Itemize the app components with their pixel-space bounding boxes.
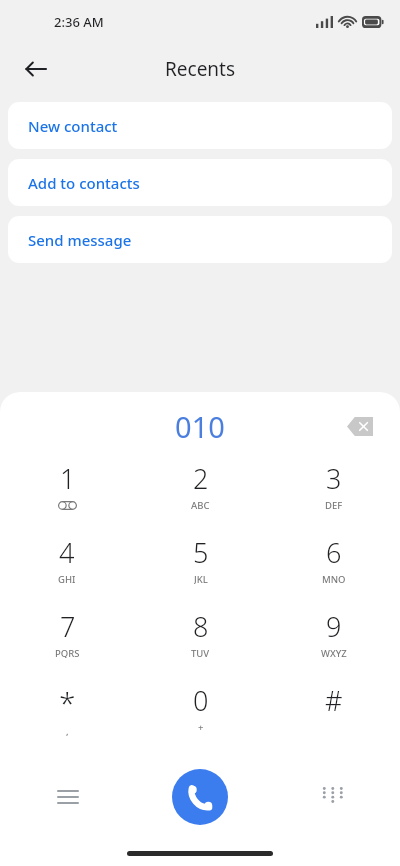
staticText: 2 [193, 460, 209, 497]
button[interactable]: 8 [134, 608, 267, 658]
button[interactable]: 9 [267, 608, 400, 658]
button[interactable]: # [267, 682, 400, 732]
staticText: MNO [322, 573, 346, 584]
button[interactable]: Back [12, 45, 60, 93]
staticText: Recents [165, 56, 236, 82]
staticText: PQRS [55, 647, 80, 658]
staticText: TUV [191, 647, 210, 658]
button[interactable]: * [0, 682, 134, 736]
button[interactable]: 3 [267, 460, 400, 510]
staticText: New contact [28, 116, 118, 136]
staticText: 8 [193, 608, 209, 645]
staticText: 6 [326, 534, 342, 571]
button[interactable]: Add to contacts [8, 159, 392, 206]
button[interactable]: Backspace [340, 406, 380, 446]
button[interactable]: 1 [0, 460, 134, 511]
staticText: 2:36 AM [54, 13, 104, 31]
staticText: 5 [193, 534, 209, 571]
staticText: 1 [60, 460, 76, 497]
staticText: 010 [175, 407, 225, 446]
button[interactable]: Call [172, 769, 228, 825]
button[interactable]: 5 [134, 534, 267, 584]
staticText: 4 [59, 534, 75, 571]
button[interactable]: 4 [0, 534, 134, 584]
staticText: 7 [60, 608, 76, 645]
button[interactable]: 6 [267, 534, 400, 584]
staticText: GHI [58, 573, 76, 584]
staticText: Add to contacts [28, 173, 140, 193]
staticText: * [59, 682, 76, 723]
staticText: Send message [28, 230, 132, 250]
staticText: 9 [326, 608, 342, 645]
staticText: 3 [326, 460, 342, 497]
staticText: DEF [325, 499, 343, 510]
button[interactable]: Send message [8, 216, 392, 263]
staticText: # [325, 682, 343, 719]
button[interactable]: More options [46, 775, 90, 819]
staticText: WXYZ [321, 647, 347, 658]
staticText: ABC [191, 499, 210, 510]
staticText: 0 [193, 682, 209, 719]
button[interactable]: 0 [134, 682, 267, 732]
button[interactable]: 2 [134, 460, 267, 510]
button[interactable]: 7 [0, 608, 134, 658]
button[interactable]: Keypad [310, 775, 354, 819]
staticText: , [66, 725, 69, 736]
staticText: JKL [194, 573, 208, 584]
staticText: + [198, 721, 204, 732]
button[interactable]: New contact [8, 102, 392, 149]
